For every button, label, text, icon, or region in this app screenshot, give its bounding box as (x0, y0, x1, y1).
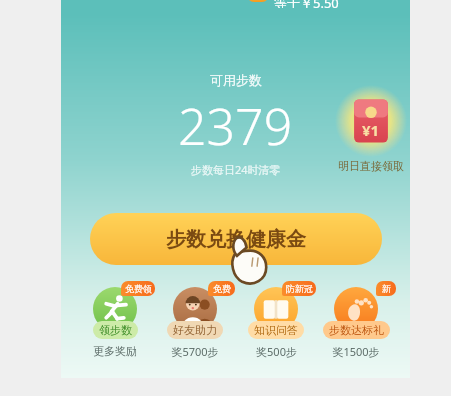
staticText: 防新冠 (286, 283, 313, 294)
staticText: 2379 (178, 92, 293, 160)
staticText: 免费领 (125, 283, 152, 294)
staticText: 奖500步 (256, 344, 297, 359)
staticText: 新 (382, 283, 391, 294)
button[interactable]: 步数兑换健康金 (90, 213, 382, 265)
staticText: 知识问答 (254, 323, 298, 337)
staticText: 免费 (213, 283, 231, 294)
staticText: 好友助力 (173, 323, 217, 337)
button[interactable]: 免费 (157, 281, 233, 359)
staticText: 奖5700步 (171, 344, 219, 359)
staticText: 奖1500步 (332, 344, 380, 359)
staticText: 可用步数 (210, 72, 262, 88)
staticText: 等于￥5.50 (274, 0, 339, 8)
button[interactable]: 防新冠 (238, 281, 314, 359)
staticText: 更多奖励 (93, 344, 137, 358)
staticText: ¥1 (362, 120, 380, 140)
staticText: 步数每日24时清零 (191, 162, 281, 177)
button[interactable]: 明日直接领取红包 (323, 85, 419, 173)
staticText: 步数达标礼 (329, 323, 384, 337)
staticText: 领步数 (99, 323, 132, 337)
staticText: 步数兑换健康金 (166, 227, 306, 252)
button[interactable]: 免费领 (77, 281, 153, 358)
staticText: 明日直接领取 (338, 159, 404, 173)
button[interactable]: 新 (318, 281, 394, 359)
